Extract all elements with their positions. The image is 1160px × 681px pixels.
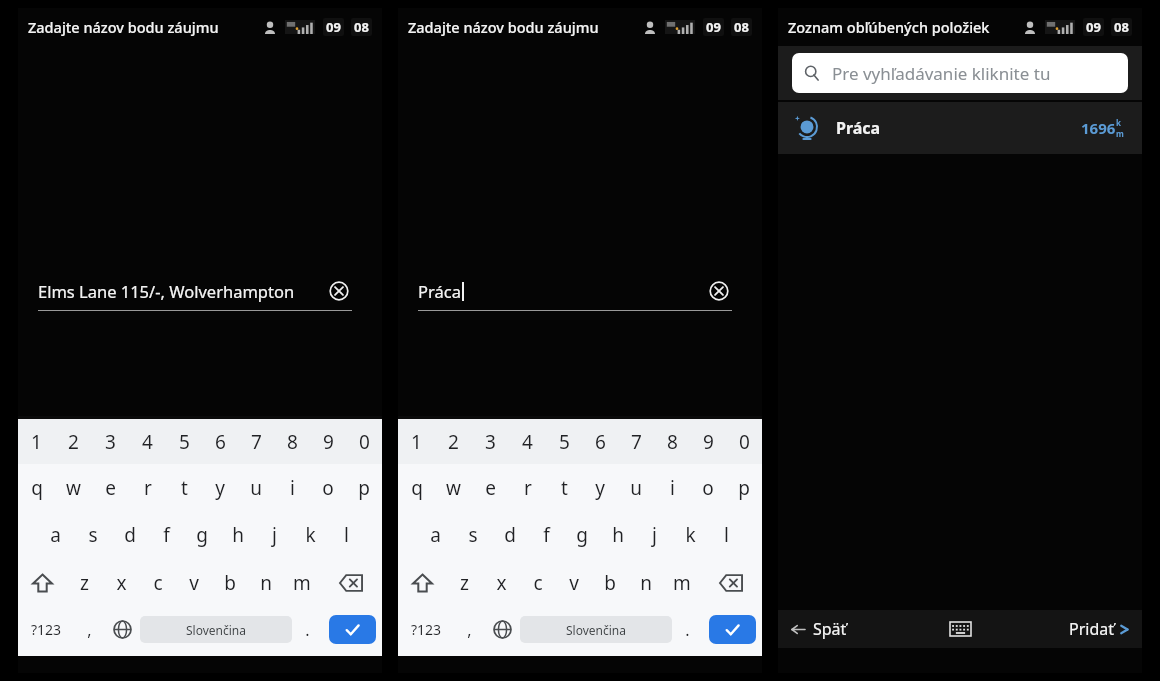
button[interactable]: , (74, 607, 105, 652)
button[interactable]: 3 (472, 419, 509, 464)
button[interactable]: x (483, 558, 520, 607)
button[interactable]: 6 (202, 419, 238, 464)
button[interactable]: g (184, 511, 220, 558)
button[interactable]: 8 (274, 419, 310, 464)
button[interactable]: a (417, 511, 454, 558)
button[interactable]: m (284, 558, 320, 607)
staticText: . (685, 619, 690, 641)
button[interactable]: Clear text (706, 278, 732, 304)
button[interactable]: f (148, 511, 184, 558)
button[interactable]: k (292, 511, 328, 558)
button[interactable]: q (18, 464, 55, 511)
button[interactable]: s (454, 511, 491, 558)
button[interactable]: o (310, 464, 346, 511)
button[interactable]: v (176, 558, 212, 607)
button[interactable]: Enter (329, 615, 376, 644)
button[interactable]: j (256, 511, 292, 558)
button[interactable]: 0 (346, 419, 382, 464)
button[interactable]: b (212, 558, 248, 607)
button[interactable]: w (55, 464, 92, 511)
button[interactable]: 0 (726, 419, 762, 464)
staticText: v (189, 570, 199, 596)
button[interactable]: Shift (18, 558, 66, 607)
button[interactable]: g (564, 511, 600, 558)
button[interactable]: 2 (55, 419, 92, 464)
button[interactable]: Change language (485, 607, 520, 652)
staticText: y (215, 475, 225, 501)
button[interactable]: y (202, 464, 238, 511)
button[interactable]: l (328, 511, 364, 558)
button[interactable]: Keyboard (938, 610, 982, 648)
button[interactable]: Späť (778, 610, 938, 648)
button[interactable]: 7 (618, 419, 654, 464)
button[interactable]: u (618, 464, 654, 511)
button[interactable]: z (446, 558, 483, 607)
button[interactable]: . (672, 607, 703, 652)
button[interactable]: e (472, 464, 509, 511)
button[interactable]: 9 (310, 419, 346, 464)
button[interactable]: Slovenčina (140, 616, 292, 643)
button[interactable]: 3 (92, 419, 129, 464)
button[interactable]: w (435, 464, 472, 511)
button[interactable]: , (454, 607, 485, 652)
button[interactable]: Slovenčina (520, 616, 672, 643)
button[interactable]: h (220, 511, 256, 558)
button[interactable]: Shift (398, 558, 446, 607)
button[interactable]: z (66, 558, 103, 607)
button[interactable]: d (111, 511, 148, 558)
button[interactable]: Backspace (320, 558, 382, 607)
button[interactable]: c (140, 558, 176, 607)
button[interactable]: Enter (709, 615, 756, 644)
button[interactable]: d (491, 511, 528, 558)
button[interactable]: x (103, 558, 140, 607)
button[interactable]: ?123 (398, 607, 454, 652)
button[interactable]: t (166, 464, 202, 511)
button[interactable]: ?123 (18, 607, 74, 652)
button[interactable]: 1 (18, 419, 55, 464)
button[interactable]: 5 (546, 419, 582, 464)
button[interactable]: l (708, 511, 744, 558)
button[interactable]: m (664, 558, 700, 607)
button[interactable]: i (654, 464, 690, 511)
button[interactable]: n (248, 558, 284, 607)
button[interactable]: a (37, 511, 74, 558)
button[interactable]: 4 (129, 419, 166, 464)
button[interactable]: j (636, 511, 672, 558)
button[interactable]: 4 (509, 419, 546, 464)
staticText: . (305, 619, 310, 641)
button[interactable]: t (546, 464, 582, 511)
button[interactable]: 9 (690, 419, 726, 464)
button[interactable]: Change language (105, 607, 140, 652)
button[interactable]: 7 (238, 419, 274, 464)
button[interactable]: n (628, 558, 664, 607)
button[interactable]: r (129, 464, 166, 511)
button[interactable]: q (398, 464, 435, 511)
button[interactable]: p (726, 464, 762, 511)
button[interactable]: 2 (435, 419, 472, 464)
button[interactable]: e (92, 464, 129, 511)
button[interactable]: r (509, 464, 546, 511)
button[interactable]: Pridať (982, 610, 1142, 648)
button[interactable]: c (520, 558, 556, 607)
button[interactable]: o (690, 464, 726, 511)
button[interactable]: 8 (654, 419, 690, 464)
button[interactable]: f (528, 511, 564, 558)
button[interactable]: h (600, 511, 636, 558)
button[interactable]: y (582, 464, 618, 511)
button[interactable]: u (238, 464, 274, 511)
button[interactable]: b (592, 558, 628, 607)
button[interactable]: Práca (778, 102, 1142, 154)
button[interactable]: 6 (582, 419, 618, 464)
button[interactable]: . (292, 607, 323, 652)
button[interactable]: 1 (398, 419, 435, 464)
button[interactable]: s (74, 511, 111, 558)
button[interactable]: 5 (166, 419, 202, 464)
button[interactable]: Clear text (326, 278, 352, 304)
button[interactable]: Pre vyhľadávanie kliknite tu (792, 53, 1128, 93)
button[interactable]: i (274, 464, 310, 511)
staticText: 3 (105, 429, 116, 455)
button[interactable]: p (346, 464, 382, 511)
button[interactable]: v (556, 558, 592, 607)
button[interactable]: k (672, 511, 708, 558)
button[interactable]: Backspace (700, 558, 762, 607)
